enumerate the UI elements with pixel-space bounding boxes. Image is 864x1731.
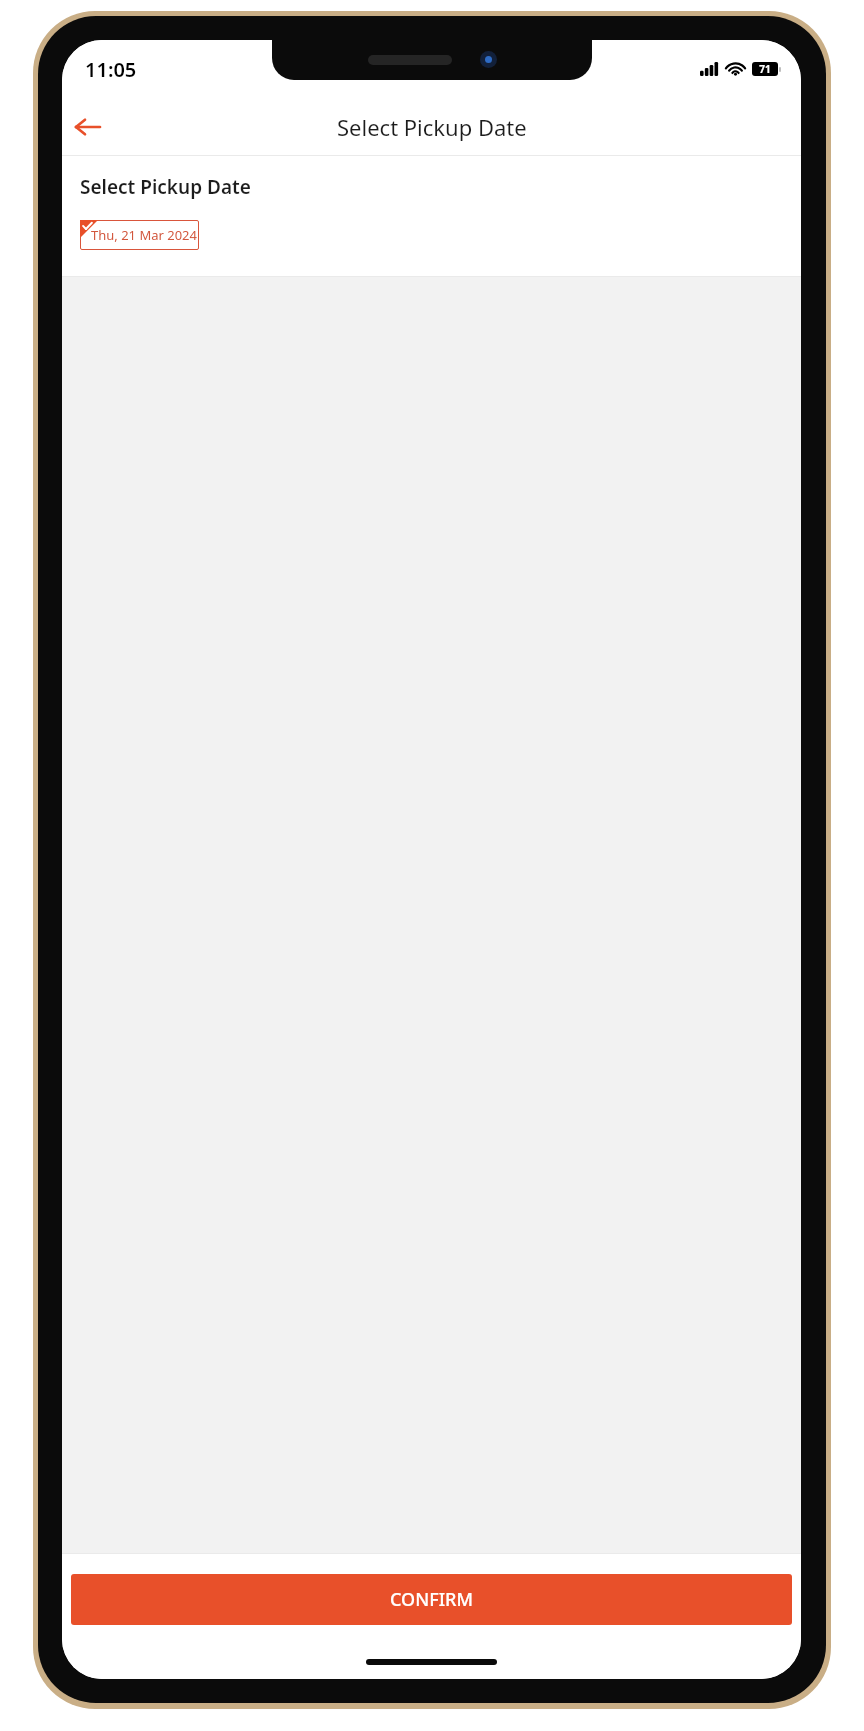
staticText: Thu, 21 Mar 2024 <box>91 226 197 244</box>
staticText: Select Pickup Date <box>80 174 251 200</box>
staticText: CONFIRM <box>390 1587 473 1612</box>
button[interactable]: Thu, 21 Mar 2024 <box>80 220 199 250</box>
button[interactable]: Back <box>62 102 112 152</box>
button[interactable]: CONFIRM <box>71 1574 792 1625</box>
staticText: 11:05 <box>85 56 137 83</box>
staticText: Select Pickup Date <box>337 112 527 142</box>
staticText: 71 <box>759 62 771 76</box>
